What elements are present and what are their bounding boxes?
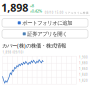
button[interactable]: ポートフォリオに追加 xyxy=(2,19,88,27)
staticText: 1,820 xyxy=(79,79,88,82)
staticText: 09/10 15:00 リアルタイム株価 xyxy=(45,11,89,14)
staticText: 1,860 xyxy=(79,67,88,71)
staticText: 1,880 xyxy=(79,61,88,65)
staticText: カバー(株)の株価・株式情報 xyxy=(2,42,66,49)
staticText: 1,900 xyxy=(79,56,88,59)
staticText: 証券アプリを開く xyxy=(27,31,67,37)
staticText: 1,898 (09/10) xyxy=(2,51,23,54)
staticText: 1,840 xyxy=(79,73,88,76)
staticText: +0.42% xyxy=(30,8,42,14)
staticText: ポートフォリオに追加 xyxy=(22,20,72,26)
staticText: 1,898 xyxy=(1,0,28,15)
staticText: +8 xyxy=(30,3,34,8)
button[interactable]: 証券アプリを開く xyxy=(2,30,88,38)
